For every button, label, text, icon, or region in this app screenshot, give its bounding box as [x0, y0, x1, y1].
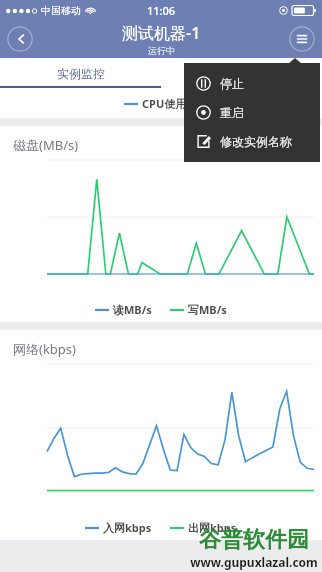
button[interactable]: 修改实例名称: [184, 127, 320, 156]
staticText: 实例详情: [218, 66, 266, 81]
staticText: 网络(kbps): [13, 340, 76, 358]
staticText: 运行中: [148, 45, 175, 56]
staticText: 实例监控: [57, 66, 105, 81]
staticText: 入网kbps: [103, 520, 152, 535]
staticText: 测试机器-1: [122, 22, 201, 44]
button[interactable]: 重启: [184, 98, 320, 127]
button[interactable]: Back: [7, 26, 33, 52]
staticText: 谷普软件园: [199, 526, 309, 554]
staticText: 中国移动: [41, 4, 81, 17]
staticText: 修改实例名称: [220, 134, 292, 149]
staticText: 重启: [220, 105, 244, 120]
staticText: 读MB/s: [113, 302, 152, 317]
staticText: 11:06: [147, 3, 176, 18]
button[interactable]: 实例监控: [0, 58, 161, 88]
button[interactable]: 实例详情: [161, 58, 322, 88]
button[interactable]: Menu: [289, 26, 315, 52]
staticText: 停止: [220, 76, 244, 91]
staticText: www.gupuxlazal.com: [190, 554, 318, 570]
staticText: CPU使用率: [142, 96, 198, 111]
staticText: 出网kbps: [188, 520, 237, 535]
button[interactable]: 停止: [184, 69, 320, 98]
staticText: 写MB/s: [188, 302, 227, 317]
staticText: 磁盘(MB/s): [13, 136, 79, 154]
